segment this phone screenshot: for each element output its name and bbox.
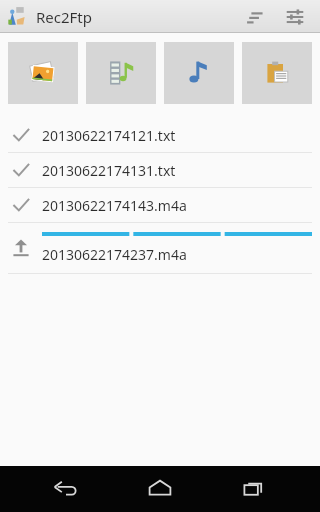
staticText: 20130622174131.txt [42, 161, 176, 180]
staticText: 20130622174121.txt [42, 126, 176, 145]
button[interactable]: Sort [238, 0, 272, 33]
button[interactable]: Music [164, 42, 234, 104]
button[interactable]: Home [132, 466, 188, 512]
button[interactable]: Settings [278, 0, 312, 33]
button[interactable]: Back [38, 466, 94, 512]
staticText: Rec2Ftp [36, 7, 92, 27]
button[interactable]: Photos [8, 42, 78, 104]
button[interactable]: 20130622174143.m4a [0, 188, 320, 222]
staticText: 20130622174237.m4a [42, 245, 187, 264]
button[interactable]: Recent apps [226, 466, 282, 512]
button[interactable]: Documents [242, 42, 312, 104]
button[interactable]: 20130622174237.m4a [0, 223, 320, 273]
button[interactable]: 20130622174131.txt [0, 153, 320, 187]
button[interactable]: 20130622174121.txt [0, 118, 320, 152]
staticText: 20130622174143.m4a [42, 196, 187, 215]
button[interactable]: Videos [86, 42, 156, 104]
